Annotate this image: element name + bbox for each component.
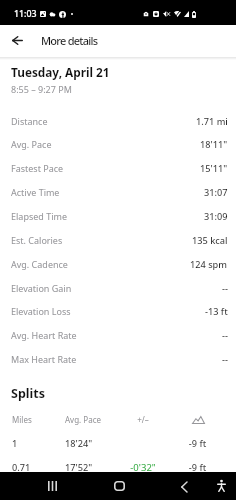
button[interactable]: Fastest Pace (0, 160, 236, 176)
staticText: More details (41, 33, 98, 48)
button[interactable]: Back (160, 472, 206, 500)
staticText: +/– (129, 414, 157, 425)
staticText: 11:03 (14, 8, 37, 20)
button[interactable]: Avg. Heart Rate (0, 327, 236, 343)
button[interactable]: Elevation Loss (0, 303, 236, 319)
staticText: 18'24" (65, 437, 93, 450)
staticText: -- (222, 353, 228, 366)
staticText: Max Heart Rate (11, 353, 77, 365)
staticText: Splits (11, 385, 45, 402)
staticText: -0'32" (129, 461, 157, 474)
button[interactable]: Active Time (0, 184, 236, 200)
staticText: 1 (12, 437, 18, 450)
staticText: Tuesday, April 21 (11, 64, 110, 80)
staticText: Distance (11, 115, 48, 127)
staticText: Avg. Cadence (11, 258, 68, 270)
staticText: 31:09 (204, 210, 228, 223)
staticText: 15'11" (200, 162, 228, 175)
button[interactable]: Avg. Cadence (0, 256, 236, 272)
staticText: Elapsed Time (11, 210, 67, 222)
button[interactable]: 0.71 (0, 460, 236, 475)
button[interactable]: Home (92, 472, 146, 500)
staticText: 1.71 mi (196, 115, 228, 128)
staticText: 18'11" (200, 138, 228, 151)
staticText: -9 ft (183, 437, 212, 450)
button[interactable]: Accessibility (206, 472, 236, 500)
button[interactable]: Est. Calories (0, 232, 236, 248)
staticText: 17'52" (65, 461, 93, 474)
button[interactable]: 1 (0, 436, 236, 451)
staticText: -9 ft (183, 461, 212, 474)
button[interactable]: Elevation Gain (0, 280, 236, 296)
staticText: 124 spm (190, 258, 228, 271)
staticText: Elevation Loss (11, 305, 71, 317)
staticText: 31:07 (204, 186, 228, 199)
staticText: -- (222, 282, 228, 295)
button[interactable]: Back (0, 25, 34, 57)
staticText: -13 ft (205, 305, 228, 318)
button[interactable]: Avg. Pace (0, 136, 236, 152)
staticText: Fastest Pace (11, 162, 64, 174)
staticText: Avg. Pace (65, 414, 101, 425)
staticText: Avg. Heart Rate (11, 329, 77, 341)
staticText: Active Time (11, 186, 60, 198)
button[interactable]: Elapsed Time (0, 208, 236, 224)
staticText: Avg. Pace (11, 138, 52, 150)
button[interactable]: Recent apps (26, 472, 79, 500)
staticText: 135 kcal (192, 234, 228, 247)
staticText: 0.71 (12, 461, 31, 474)
button[interactable]: Distance (0, 113, 236, 129)
button[interactable]: Max Heart Rate (0, 351, 236, 367)
staticText: -- (222, 329, 228, 342)
staticText: Miles (12, 414, 32, 425)
staticText: 8:55 – 9:27 PM (11, 83, 72, 95)
staticText: Est. Calories (11, 234, 63, 246)
staticText: Elevation Gain (11, 282, 72, 294)
